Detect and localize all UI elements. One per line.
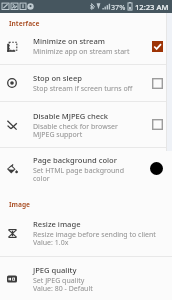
button[interactable]: Page background color — [0, 148, 172, 189]
button[interactable]: Minimize on stream — [0, 29, 172, 64]
staticText: Resize image before sending to client Va… — [33, 230, 156, 247]
staticText: Set JPEG quality Value: 80 - Default — [33, 276, 93, 293]
staticText: Image — [9, 200, 31, 209]
staticText: Page background color — [33, 155, 117, 165]
staticText: Interface — [9, 19, 40, 28]
staticText: 12:23 AM — [135, 2, 169, 12]
button[interactable]: Resize image — [0, 210, 172, 256]
staticText: Set HTML page background color — [33, 166, 124, 183]
staticText: Disable MJPEG check — [33, 111, 109, 121]
button[interactable]: Toggle setting — [152, 78, 163, 89]
staticText: Resize image — [33, 219, 81, 229]
button[interactable]: Stop on sleep — [0, 65, 172, 101]
staticText: Stop stream if screen turns off — [33, 84, 133, 94]
staticText: JPEG quality — [33, 265, 77, 275]
button[interactable]: JPEG quality — [0, 257, 172, 300]
button[interactable]: Disable MJPEG check — [0, 102, 172, 147]
staticText: 37% — [111, 2, 126, 12]
button[interactable]: Toggle setting — [152, 41, 163, 52]
staticText: Stop on sleep — [33, 73, 82, 83]
staticText: Minimize on stream — [33, 36, 105, 46]
button[interactable]: Toggle setting — [152, 119, 163, 130]
staticText: Minimize app on stream start — [33, 47, 130, 57]
staticText: Disable check for browser MJPEG support — [33, 122, 118, 139]
